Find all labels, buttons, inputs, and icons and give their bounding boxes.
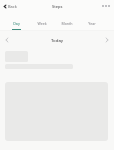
- button[interactable]: Week: [29, 14, 54, 31]
- staticText: Steps: [52, 4, 63, 9]
- staticText: Month: [61, 21, 73, 26]
- button[interactable]: Next day: [102, 34, 114, 46]
- button[interactable]: Previous day: [0, 34, 12, 46]
- button[interactable]: Month: [54, 14, 79, 31]
- staticText: Back: [8, 4, 17, 9]
- staticText: Week: [37, 21, 47, 26]
- staticText: Today: [51, 37, 64, 43]
- button[interactable]: More options: [98, 2, 114, 10]
- staticText: Year: [88, 21, 96, 26]
- button[interactable]: Back: [0, 2, 21, 11]
- staticText: Day: [13, 21, 20, 26]
- button[interactable]: Day: [4, 14, 29, 31]
- button[interactable]: Year: [79, 14, 104, 31]
